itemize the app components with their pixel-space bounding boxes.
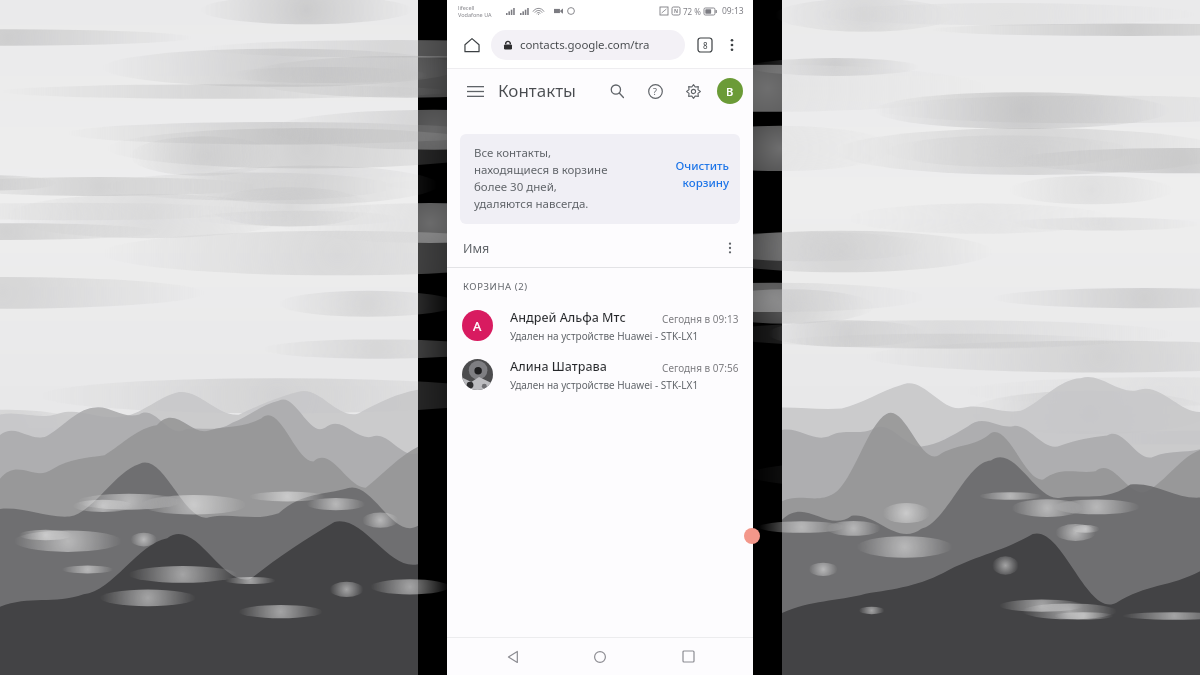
button[interactable]: Алина Шатрава [447, 350, 753, 399]
staticText: В [726, 84, 734, 99]
staticText: 09:13 [722, 5, 744, 17]
button[interactable]: Help [642, 78, 668, 104]
staticText: Сегодня в 07:56 [662, 361, 739, 375]
button[interactable]: Account [717, 78, 743, 104]
staticText: Имя [463, 240, 490, 257]
button[interactable]: Имя [447, 229, 753, 267]
staticText: ? [653, 85, 657, 97]
button[interactable]: Tabs [691, 31, 719, 59]
button[interactable]: Create contact [744, 528, 760, 544]
button[interactable]: Все контакты, находящиеся в корзине боле… [460, 134, 740, 224]
staticText: A [473, 317, 482, 335]
staticText: Андрей Альфа Мтс [510, 309, 626, 326]
button[interactable]: A [447, 301, 753, 350]
button[interactable]: Back [491, 638, 535, 675]
button[interactable]: Menu [463, 79, 487, 103]
staticText: lifecell [458, 4, 475, 11]
button[interactable]: Recents [666, 638, 710, 675]
staticText: Контакты [498, 79, 577, 102]
staticText: КОРЗИНА (2) [463, 280, 528, 293]
staticText: Все контакты, находящиеся в корзине боле… [474, 145, 675, 212]
staticText: Очистить корзину [675, 158, 729, 191]
button[interactable]: Home [578, 638, 622, 675]
staticText: N [674, 8, 679, 15]
staticText: Vodafone UA [458, 11, 492, 18]
button[interactable]: Sort options [719, 237, 741, 259]
staticText: 8 [703, 40, 708, 51]
staticText: Сегодня в 09:13 [662, 312, 739, 326]
button[interactable]: Settings [680, 78, 706, 104]
staticText: Удален на устройстве Huawei - STK-LX1 [510, 329, 699, 343]
button[interactable]: Home [457, 30, 487, 60]
button[interactable]: More options [719, 32, 745, 58]
button[interactable]: contacts.google.com/tra [491, 30, 685, 60]
staticText: Алина Шатрава [510, 358, 607, 375]
button[interactable]: Search [604, 78, 630, 104]
staticText: 72 % [683, 6, 701, 17]
staticText: Удален на устройстве Huawei - STK-LX1 [510, 378, 699, 392]
staticText: contacts.google.com/tra [520, 37, 650, 53]
